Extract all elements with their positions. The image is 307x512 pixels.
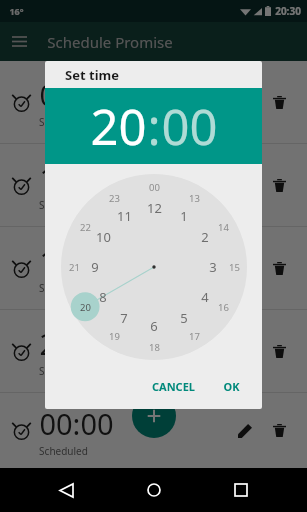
staticText: 8 bbox=[99, 288, 107, 306]
staticText: 13 bbox=[189, 192, 200, 205]
staticText: CANCEL bbox=[152, 379, 195, 394]
button[interactable]: Delete bbox=[263, 86, 296, 119]
staticText: 6 bbox=[150, 317, 158, 335]
button[interactable]: 16:00 bbox=[0, 227, 307, 309]
button[interactable]: Delete bbox=[263, 335, 296, 368]
staticText: Scheduled bbox=[39, 364, 88, 378]
staticText: 4 bbox=[201, 288, 209, 306]
staticText: 12 bbox=[147, 199, 162, 217]
staticText: 16° bbox=[9, 5, 24, 17]
staticText: : bbox=[147, 93, 161, 160]
staticText: 23 bbox=[109, 192, 120, 205]
button[interactable]: Open navigation menu bbox=[0, 22, 39, 61]
staticText: Scheduled bbox=[39, 281, 88, 295]
staticText: 00 bbox=[149, 181, 160, 194]
staticText: 00 bbox=[161, 93, 218, 160]
staticText: 17 bbox=[189, 330, 200, 343]
staticText: Set time bbox=[65, 66, 119, 84]
staticText: 2 bbox=[201, 228, 209, 246]
button[interactable]: Back bbox=[44, 468, 88, 512]
button[interactable]: 00 bbox=[161, 93, 218, 160]
staticText: Scheduled bbox=[39, 444, 88, 458]
staticText: Scheduled bbox=[39, 198, 88, 212]
staticText: 20:00 bbox=[39, 324, 114, 363]
button[interactable]: 08:00 bbox=[0, 61, 307, 143]
staticText: 11 bbox=[117, 207, 132, 225]
staticText: 15 bbox=[229, 261, 240, 274]
button[interactable]: Delete bbox=[263, 414, 296, 447]
staticText: 1 bbox=[180, 207, 188, 225]
button[interactable]: Edit bbox=[228, 414, 261, 447]
staticText: 08:00 bbox=[39, 75, 114, 114]
button[interactable]: Edit bbox=[228, 252, 261, 285]
staticText: 20:30 bbox=[275, 4, 301, 18]
staticText: 10 bbox=[96, 228, 111, 246]
staticText: 16 bbox=[218, 301, 229, 314]
staticText: 12:00 bbox=[39, 158, 114, 197]
button[interactable]: Edit bbox=[228, 86, 261, 119]
staticText: OK bbox=[223, 379, 240, 394]
staticText: 21 bbox=[69, 261, 80, 274]
button[interactable]: Delete bbox=[263, 252, 296, 285]
staticText: 16:00 bbox=[39, 241, 114, 280]
button[interactable]: 20 bbox=[90, 93, 147, 160]
staticText: 22 bbox=[80, 221, 91, 234]
staticText: 20 bbox=[80, 301, 91, 314]
staticText: 00:00 bbox=[39, 404, 114, 443]
button[interactable]: Delete bbox=[263, 169, 296, 202]
button[interactable]: CANCEL bbox=[144, 373, 203, 400]
button[interactable]: Home bbox=[132, 468, 176, 512]
staticText: 7 bbox=[120, 309, 128, 327]
staticText: 9 bbox=[91, 258, 99, 276]
button[interactable]: 12:00 bbox=[0, 144, 307, 226]
staticText: 18 bbox=[149, 341, 160, 354]
staticText: Schedule Promise bbox=[47, 32, 173, 52]
button[interactable]: Add promise bbox=[132, 394, 176, 438]
staticText: 20 bbox=[90, 93, 147, 160]
button[interactable]: 00:00 bbox=[0, 393, 307, 468]
staticText: Scheduled bbox=[39, 115, 88, 129]
button[interactable]: Recent apps bbox=[219, 468, 263, 512]
staticText: 5 bbox=[180, 309, 188, 327]
button[interactable]: 20:00 bbox=[0, 310, 307, 392]
staticText: 14 bbox=[218, 221, 229, 234]
staticText: 3 bbox=[209, 258, 217, 276]
staticText: 19 bbox=[109, 330, 120, 343]
button[interactable]: OK bbox=[215, 373, 248, 400]
